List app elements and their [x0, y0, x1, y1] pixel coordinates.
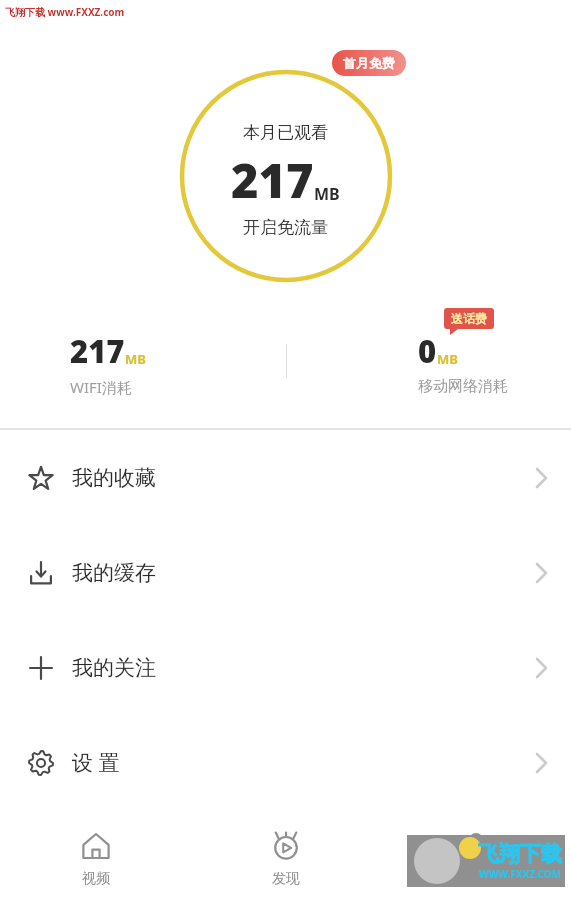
staticText: 送话费 [451, 311, 487, 326]
staticText: MB [125, 350, 146, 368]
button[interactable]: 送话费 [444, 308, 494, 335]
staticText: 217 [231, 148, 314, 212]
staticText: 本月已观看 [243, 122, 328, 143]
button[interactable]: 我 [381, 819, 571, 899]
staticText: 设 置 [72, 748, 120, 777]
button[interactable]: 我的缓存 [0, 525, 571, 620]
button[interactable]: 0 [418, 330, 508, 396]
button[interactable]: 视频 [0, 819, 191, 899]
staticText: 飞翔下载 www.FXXZ.com [5, 5, 125, 19]
staticText: MB [314, 183, 340, 205]
button[interactable]: 我的关注 [0, 620, 571, 715]
button[interactable]: 我的收藏 [0, 430, 571, 525]
staticText: 0 [418, 330, 437, 372]
button[interactable]: 设 置 [0, 715, 571, 810]
staticText: 我的缓存 [72, 560, 156, 586]
staticText: WIFI消耗 [70, 377, 132, 397]
button[interactable]: 发现 [191, 819, 381, 899]
staticText: WWW.FXXZ.COM [479, 867, 561, 881]
button[interactable]: 首月免费 [332, 50, 406, 76]
staticText: 移动网络消耗 [418, 377, 508, 396]
button[interactable]: 217 [70, 330, 146, 397]
staticText: 飞翔下载 [478, 841, 562, 867]
staticText: 发现 [272, 870, 300, 888]
staticText: 我 [469, 870, 483, 888]
staticText: MB [437, 350, 458, 368]
staticText: 我的收藏 [72, 465, 156, 491]
staticText: 217 [70, 330, 125, 372]
staticText: 开启免流量 [243, 217, 328, 238]
staticText: 首月免费 [343, 55, 395, 71]
staticText: 我的关注 [72, 655, 156, 681]
staticText: 视频 [82, 870, 110, 888]
